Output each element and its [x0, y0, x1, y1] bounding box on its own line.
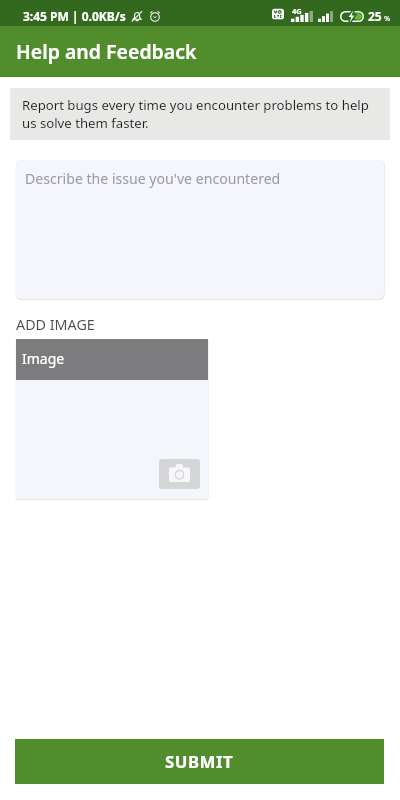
- staticText: 4G: [292, 6, 302, 16]
- staticText: 3:45 PM | 0.0KB/s: [23, 8, 126, 24]
- staticText: 25: [368, 8, 382, 24]
- staticText: SUBMIT: [165, 750, 234, 773]
- staticText: Help and Feedback: [16, 38, 197, 65]
- button[interactable]: SUBMIT: [15, 739, 384, 784]
- staticText: %: [384, 13, 391, 23]
- staticText: Report bugs every time you encounter pro…: [22, 96, 382, 132]
- staticText: ADD IMAGE: [16, 315, 95, 334]
- staticText: Describe the issue you've encountered: [25, 169, 281, 188]
- staticText: Image: [22, 349, 65, 368]
- button[interactable]: Describe the issue you've encountered: [16, 160, 384, 299]
- button[interactable]: Take photo: [159, 459, 200, 489]
